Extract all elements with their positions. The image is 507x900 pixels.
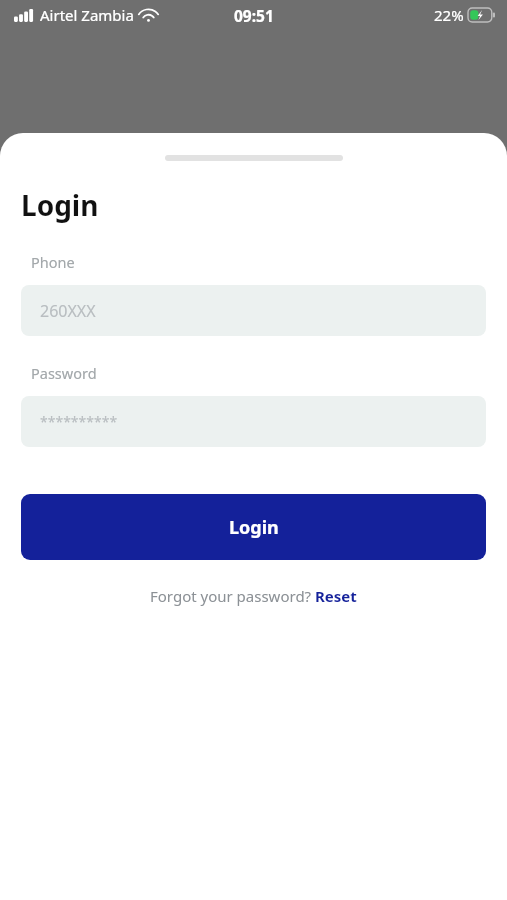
staticText: Login bbox=[21, 186, 99, 224]
staticText: 09:51 bbox=[234, 5, 274, 26]
button[interactable]: 260XXX bbox=[21, 285, 486, 336]
button[interactable]: ********** bbox=[21, 396, 486, 447]
staticText: ********** bbox=[40, 412, 118, 431]
button[interactable]: Forgot your password? Reset bbox=[142, 584, 365, 608]
button[interactable]: Login bbox=[21, 494, 486, 560]
staticText: 22% bbox=[434, 5, 464, 25]
staticText: Password bbox=[31, 363, 97, 383]
staticText: Airtel Zambia bbox=[40, 5, 134, 25]
staticText: Phone bbox=[31, 252, 75, 272]
staticText: Forgot your password? Reset bbox=[150, 586, 357, 606]
staticText: Login bbox=[229, 515, 279, 540]
staticText: 260XXX bbox=[40, 300, 96, 322]
